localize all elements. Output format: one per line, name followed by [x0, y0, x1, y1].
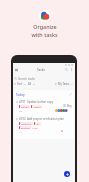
button[interactable]: QA — [34, 122, 41, 125]
staticText: +1 — [19, 130, 22, 133]
staticText: Search tasks — [18, 77, 35, 81]
staticText: All — [28, 82, 32, 86]
other: Edit — [69, 93, 72, 96]
button[interactable]: Blocked — [19, 126, 31, 129]
button[interactable]: Search tasks — [14, 76, 73, 81]
staticText: Urgent — [33, 105, 41, 108]
staticText: My Tasks — [58, 82, 70, 86]
button[interactable]: Today — [16, 92, 72, 97]
staticText: Design — [21, 105, 29, 108]
staticText: #702 Add project verification plan — [19, 117, 64, 121]
staticText: Research — [21, 122, 32, 125]
button[interactable]: Menu — [14, 67, 19, 72]
staticText: QA — [36, 122, 40, 125]
button[interactable]: More options — [69, 67, 74, 72]
staticText: Organize — [33, 23, 57, 30]
button[interactable]: #702 Add project verification plan — [16, 117, 72, 133]
button[interactable]: Sort — [14, 82, 26, 86]
button[interactable]: Search — [64, 67, 69, 72]
staticText: Today — [16, 93, 25, 97]
button[interactable]: All — [28, 82, 35, 86]
staticText: #701 Update button copy — [19, 100, 54, 104]
staticText: Blocked — [21, 126, 30, 129]
staticText: Sort — [17, 82, 23, 86]
button[interactable]: My Tasks — [55, 82, 73, 86]
staticText: with tasks — [31, 31, 58, 38]
staticText: +2 — [19, 109, 22, 112]
button[interactable]: Add task — [64, 171, 70, 177]
button[interactable]: Urgent — [31, 105, 42, 108]
other: Tasks app icon — [39, 10, 51, 22]
button[interactable]: Research — [19, 122, 33, 125]
button[interactable]: Design — [19, 105, 30, 108]
staticText: Tasks — [37, 68, 46, 72]
button[interactable]: #701 Update button copy — [16, 100, 72, 112]
staticText: 2 Jun — [32, 126, 38, 129]
staticText: 30 May — [63, 104, 72, 108]
